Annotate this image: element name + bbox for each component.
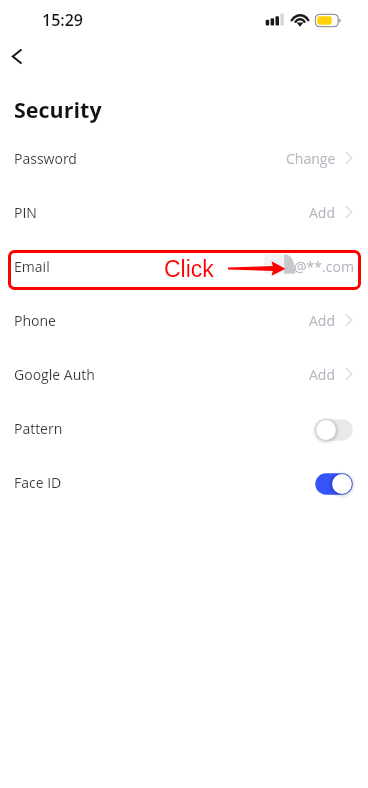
button[interactable]: Google Auth <box>0 347 368 401</box>
button[interactable]: Phone <box>0 293 368 347</box>
staticText: Pattern <box>14 419 63 438</box>
button[interactable]: Pattern <box>0 401 368 455</box>
staticText: Security <box>14 95 102 124</box>
button[interactable]: Back <box>3 42 33 72</box>
staticText: Change <box>286 149 336 168</box>
button[interactable]: Password <box>0 131 368 185</box>
staticText: Google Auth <box>14 365 95 384</box>
button[interactable]: Pattern switch <box>315 419 353 441</box>
button[interactable]: Face ID <box>0 455 368 509</box>
staticText: Phone <box>14 311 56 330</box>
button[interactable]: PIN <box>0 185 368 239</box>
staticText: PIN <box>14 203 37 222</box>
staticText: Click <box>164 256 214 282</box>
button[interactable]: Face ID switch <box>315 473 353 495</box>
staticText: Add <box>309 311 336 330</box>
staticText: @**.com <box>294 257 354 276</box>
staticText: Face ID <box>14 473 62 492</box>
staticText: Email <box>14 257 50 276</box>
staticText: 15:29 <box>42 9 83 31</box>
staticText: Add <box>309 203 336 222</box>
button[interactable]: Email <box>0 239 368 293</box>
staticText: Add <box>309 365 336 384</box>
staticText: Password <box>14 149 77 168</box>
